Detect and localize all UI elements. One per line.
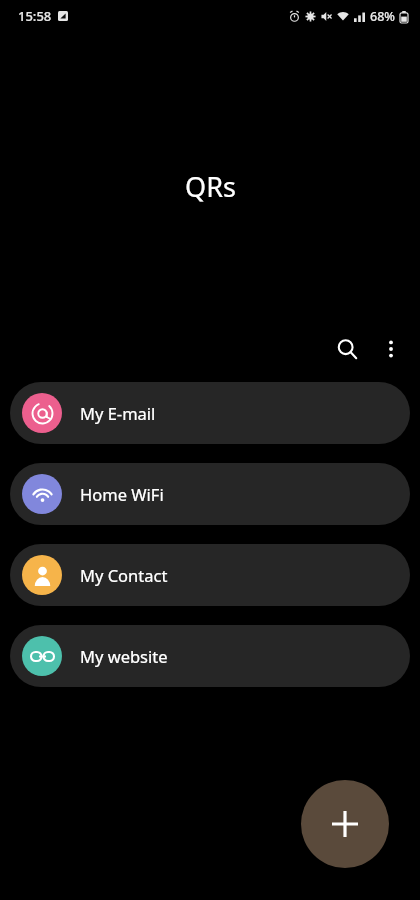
staticText: 15:58 [18,7,52,25]
staticText: Home WiFi [80,483,164,505]
staticText: QRs [185,168,236,205]
staticText: 68% [370,8,395,25]
button[interactable]: Add [301,780,389,868]
button[interactable]: Home WiFi [10,463,410,525]
button[interactable]: Search [325,327,369,371]
staticText: My E-mail [80,402,156,424]
staticText: My Contact [80,564,168,586]
button[interactable]: More options [369,327,413,371]
button[interactable]: My E-mail [10,382,410,444]
staticText: My website [80,645,168,667]
button[interactable]: My Contact [10,544,410,606]
button[interactable]: My website [10,625,410,687]
